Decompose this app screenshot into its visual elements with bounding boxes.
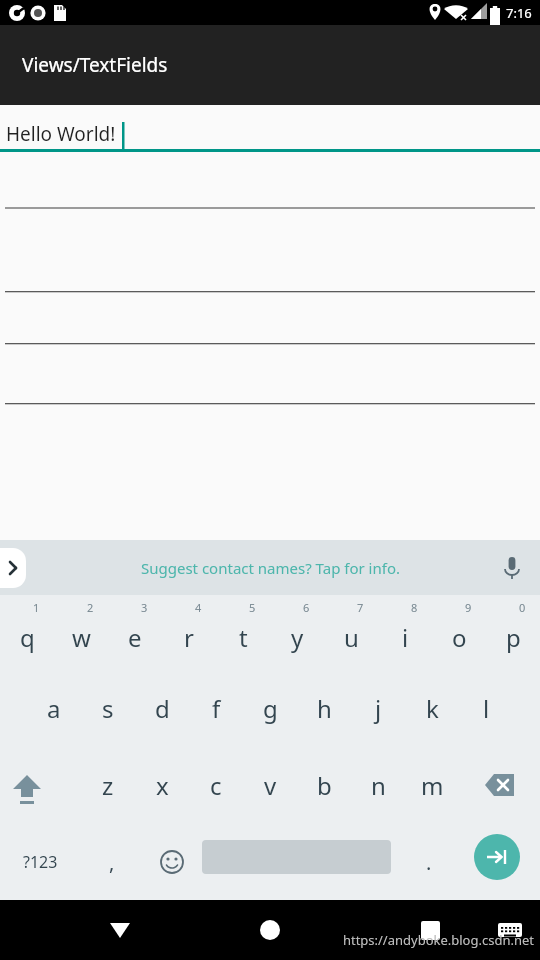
staticText: c xyxy=(210,769,222,802)
button[interactable]: g xyxy=(243,671,297,746)
staticText: o xyxy=(452,621,467,654)
button[interactable]: b xyxy=(297,746,351,824)
button[interactable]: 2 xyxy=(54,595,108,671)
button[interactable]: Home xyxy=(248,908,292,952)
staticText: Views/TextFields xyxy=(22,52,168,78)
button[interactable]: Switch keyboard xyxy=(490,910,530,950)
staticText: r xyxy=(184,621,194,654)
staticText: x xyxy=(156,769,169,802)
button[interactable]: v xyxy=(243,746,297,824)
staticText: q xyxy=(20,621,35,654)
staticText: z xyxy=(102,769,114,802)
button[interactable]: f xyxy=(189,671,243,746)
staticText: k xyxy=(426,692,439,725)
staticText: 7 xyxy=(357,600,364,615)
button[interactable]: Recents xyxy=(408,908,452,952)
staticText: l xyxy=(483,692,490,725)
button[interactable]: Shift xyxy=(0,746,54,824)
staticText: t xyxy=(239,621,248,654)
staticText: e xyxy=(128,621,142,654)
button[interactable]: c xyxy=(189,746,243,824)
button[interactable]: . xyxy=(391,824,467,900)
button[interactable]: m xyxy=(405,746,459,824)
staticText: 0 xyxy=(519,600,526,615)
button[interactable]: j xyxy=(351,671,405,746)
staticText: a xyxy=(47,692,61,725)
staticText: 3 xyxy=(141,600,148,615)
staticText: 2 xyxy=(87,600,94,615)
staticText: 7:16 xyxy=(506,4,532,22)
button[interactable]: k xyxy=(405,671,459,746)
button[interactable]: Enter xyxy=(474,834,520,880)
staticText: 9 xyxy=(465,600,472,615)
staticText: 1 xyxy=(33,600,40,615)
button[interactable]: 3 xyxy=(108,595,162,671)
staticText: i xyxy=(402,621,409,654)
button[interactable]: d xyxy=(135,671,189,746)
staticText: d xyxy=(155,692,170,725)
button[interactable]: n xyxy=(351,746,405,824)
button[interactable]: a xyxy=(27,671,81,746)
staticText: j xyxy=(375,692,382,725)
staticText: f xyxy=(212,692,221,725)
staticText: b xyxy=(317,769,332,802)
button[interactable]: 7 xyxy=(324,595,378,671)
staticText: 5 xyxy=(249,600,256,615)
button[interactable]: Expand suggestions xyxy=(0,548,26,588)
staticText: m xyxy=(421,769,444,802)
button[interactable]: Suggest contact names? Tap for info. xyxy=(141,558,400,578)
button[interactable]: 9 xyxy=(432,595,486,671)
staticText: g xyxy=(263,692,278,725)
button[interactable]: Emoji xyxy=(142,824,202,900)
staticText: ?123 xyxy=(23,851,58,873)
staticText: , xyxy=(109,849,115,876)
button[interactable]: 0 xyxy=(486,595,540,671)
staticText: u xyxy=(344,621,359,654)
staticText: 4 xyxy=(195,600,202,615)
staticText: y xyxy=(291,621,304,654)
staticText: h xyxy=(317,692,332,725)
button[interactable]: , xyxy=(81,824,142,900)
button[interactable]: Back xyxy=(98,908,142,952)
button[interactable]: Backspace xyxy=(459,746,540,824)
staticText: 6 xyxy=(303,600,310,615)
button[interactable]: ?123 xyxy=(0,824,81,900)
staticText: 8 xyxy=(411,600,418,615)
button[interactable]: 5 xyxy=(216,595,270,671)
button[interactable]: Voice input xyxy=(498,554,526,582)
staticText: https://andyboke.blog.csdn.net xyxy=(342,931,534,949)
staticText: s xyxy=(102,692,114,725)
staticText: . xyxy=(426,849,432,876)
staticText: w xyxy=(72,621,91,654)
button[interactable]: 4 xyxy=(162,595,216,671)
button[interactable]: 8 xyxy=(378,595,432,671)
button[interactable]: s xyxy=(81,671,135,746)
button[interactable]: x xyxy=(135,746,189,824)
button[interactable]: 6 xyxy=(270,595,324,671)
staticText: v xyxy=(264,769,277,802)
staticText: Hello World! xyxy=(6,121,116,147)
button[interactable]: h xyxy=(297,671,351,746)
button[interactable]: z xyxy=(81,746,135,824)
button[interactable]: 1 xyxy=(0,595,54,671)
staticText: p xyxy=(506,621,521,654)
staticText: n xyxy=(371,769,386,802)
button[interactable]: l xyxy=(459,671,513,746)
